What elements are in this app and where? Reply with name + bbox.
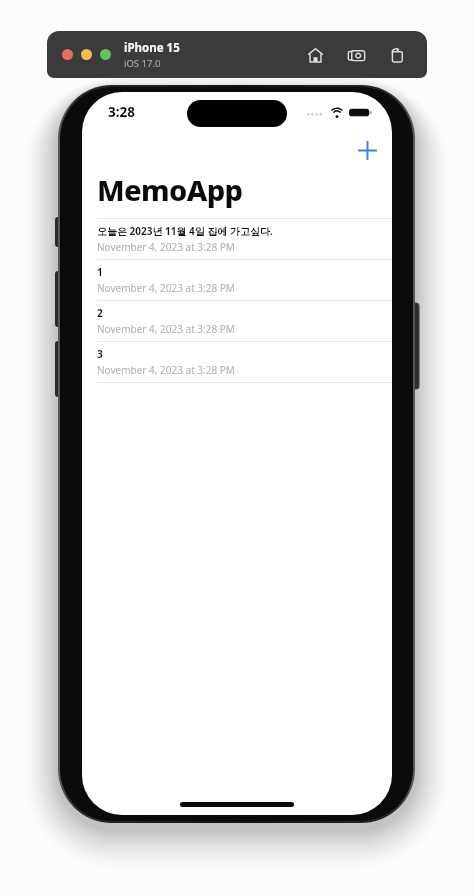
- button[interactable]: Zoom: [100, 49, 111, 60]
- button[interactable]: Close: [62, 49, 73, 60]
- staticText: November 4, 2023 at 3:28 PM: [97, 281, 235, 295]
- staticText: 3: [97, 347, 103, 361]
- button[interactable]: Rotate: [385, 43, 409, 67]
- button[interactable]: Add memo: [350, 133, 384, 167]
- button[interactable]: Screenshot: [344, 43, 368, 67]
- button[interactable]: 2: [82, 301, 392, 341]
- staticText: 오늘은 2023년 11월 4일 집에 가고싶다.: [97, 224, 273, 238]
- staticText: 2: [97, 306, 103, 320]
- button[interactable]: Minimize: [81, 49, 92, 60]
- staticText: 3:28: [108, 103, 135, 121]
- button[interactable]: Home: [303, 43, 327, 67]
- button[interactable]: 1: [82, 260, 392, 300]
- staticText: 1: [97, 265, 103, 279]
- button[interactable]: 3: [82, 342, 392, 382]
- staticText: November 4, 2023 at 3:28 PM: [97, 240, 235, 254]
- button[interactable]: 오늘은 2023년 11월 4일 집에 가고싶다.: [82, 219, 392, 259]
- staticText: November 4, 2023 at 3:28 PM: [97, 322, 235, 336]
- staticText: iPhone 15: [124, 40, 180, 56]
- staticText: iOS 17.0: [124, 57, 161, 70]
- staticText: November 4, 2023 at 3:28 PM: [97, 363, 235, 377]
- staticText: MemoApp: [97, 170, 243, 209]
